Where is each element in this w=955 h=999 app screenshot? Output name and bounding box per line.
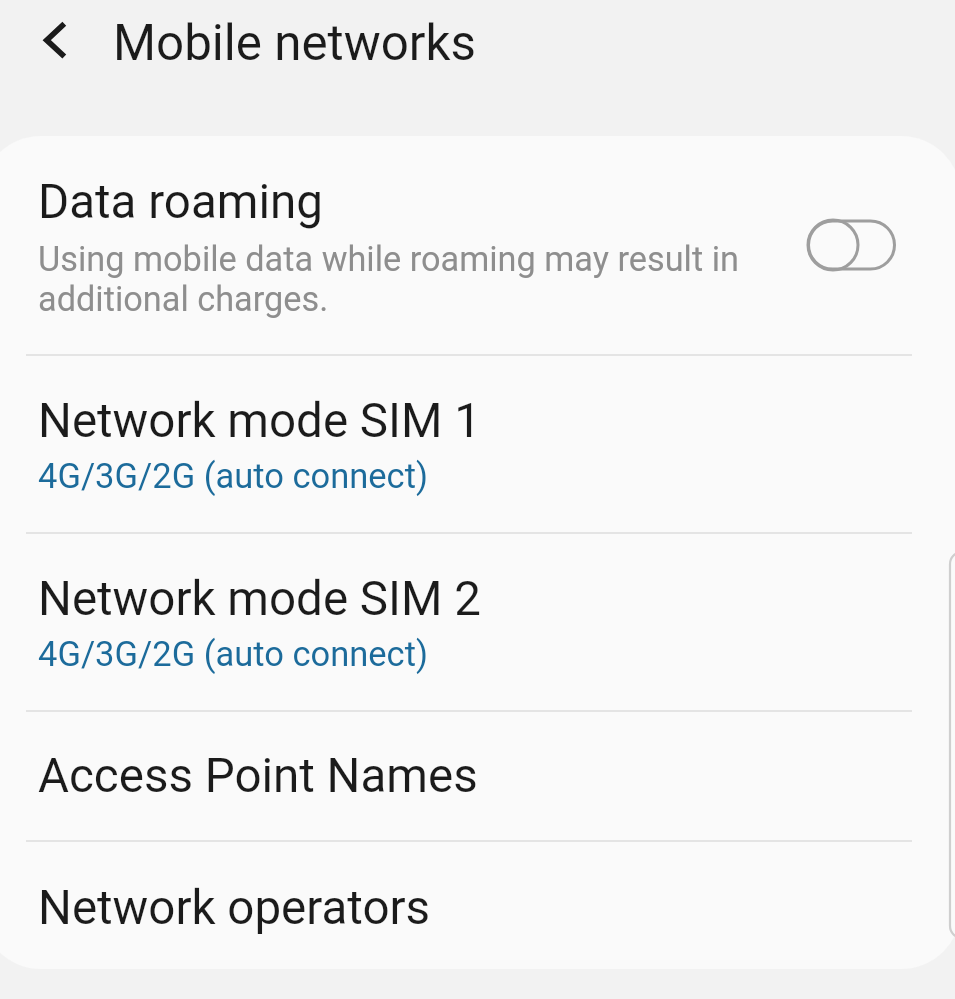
staticText: 4G/3G/2G (auto connect) [38,456,428,496]
button[interactable]: Navigate up [11,7,99,73]
staticText: Using mobile data while roaming may resu… [38,239,744,319]
staticText: Network mode SIM 2 [38,571,481,627]
staticText: Mobile networks [113,14,476,72]
staticText: Network operators [38,880,431,936]
button[interactable]: Data roaming [0,136,955,354]
button[interactable]: Network mode SIM 2 [0,534,955,710]
button[interactable]: Network mode SIM 1 [0,356,955,532]
button[interactable]: Access Point Names [0,712,955,840]
staticText: 4G/3G/2G (auto connect) [38,634,428,674]
button[interactable]: Network operators [0,842,955,969]
staticText: Data roaming [38,174,323,230]
staticText: Access Point Names [38,748,478,804]
staticText: Network mode SIM 1 [38,393,481,449]
